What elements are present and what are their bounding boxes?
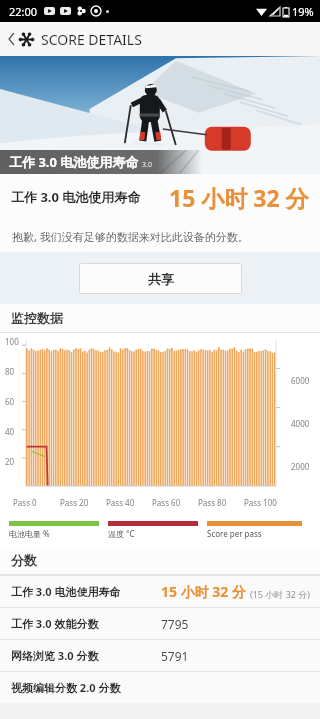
staticText: 60 [5, 396, 15, 407]
button[interactable]: 工作 3.0 电池使用寿命 [0, 576, 320, 607]
staticText: 15 小时 32 分 [161, 582, 246, 601]
button[interactable]: 工作 3.0 效能分数 [0, 608, 320, 639]
staticText: Pass 20 [60, 497, 89, 508]
staticText: Pass 40 [106, 497, 135, 508]
staticText: 2000 [291, 461, 310, 472]
staticText: 100 [5, 336, 19, 347]
staticText: SCORE DETAILS [41, 30, 142, 49]
button[interactable]: 视频编辑分数 2.0 分数 [0, 672, 320, 703]
staticText: 网络浏览 3.0 分数 [11, 648, 99, 663]
staticText: 6000 [291, 375, 310, 386]
staticText: 工作 3.0 电池使用寿命 [11, 584, 121, 599]
staticText: Pass 0 [13, 497, 37, 508]
staticText: 5791 [161, 648, 189, 664]
staticText: 电池电量 % [9, 528, 50, 539]
staticText: 视频编辑分数 2.0 分数 [11, 680, 121, 695]
staticText: (15 小时 32 分) [250, 588, 311, 600]
staticText: 工作 3.0 电池使用寿命 [9, 153, 139, 171]
button[interactable]: Back [0, 22, 320, 56]
staticText: Score per pass [207, 528, 262, 539]
staticText: 抱歉, 我们没有足够的数据来对比此设备的分数。 [12, 229, 249, 244]
button[interactable]: 网络浏览 3.0 分数 [0, 640, 320, 671]
staticText: Pass 60 [152, 497, 181, 508]
staticText: 4000 [291, 418, 310, 429]
staticText: 20 [5, 456, 15, 467]
other: Back [4, 26, 18, 52]
staticText: 7795 [161, 616, 189, 632]
staticText: 40 [5, 426, 15, 437]
staticText: 监控数据 [11, 310, 63, 326]
staticText: 22:00 [9, 4, 38, 19]
staticText: 3.0 [142, 160, 152, 170]
button[interactable]: 共享 [79, 263, 242, 294]
staticText: 工作 3.0 电池使用寿命 [11, 188, 141, 206]
staticText: 15 小时 32 分 [169, 182, 309, 213]
staticText: 共享 [148, 271, 174, 287]
staticText: 温度 °C [108, 528, 135, 539]
staticText: Pass 80 [198, 497, 227, 508]
staticText: 80 [5, 366, 15, 377]
staticText: 19% [292, 4, 314, 19]
staticText: 分数 [11, 552, 37, 568]
staticText: Pass 100 [244, 497, 277, 508]
staticText: 工作 3.0 效能分数 [11, 616, 99, 631]
